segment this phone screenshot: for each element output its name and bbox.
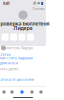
button[interactable]: Готово xyxy=(32,6,44,11)
staticText: ıll ≋ ▮ xyxy=(33,0,43,6)
staticText: Статья xyxy=(0,52,10,57)
staticText: Проверка Бюллетеня xyxy=(0,20,49,27)
button[interactable]: Toolbar item xyxy=(30,90,34,94)
staticText: Бюллетень Лидера xyxy=(1,46,33,50)
staticText: Блог, как стать лидером xyxy=(0,56,33,60)
button[interactable]: Toolbar item xyxy=(39,90,43,94)
button[interactable]: Toolbar item xyxy=(20,90,24,94)
button[interactable]: Toolbar item xyxy=(10,90,14,94)
staticText: Отписаться от рассылки xyxy=(0,77,34,82)
button[interactable]: Action xyxy=(18,33,25,40)
staticText: Лидера xyxy=(13,24,32,32)
staticText: Читать далее xyxy=(0,67,18,71)
staticText: 9:41 xyxy=(2,0,9,6)
staticText: Подписаться xyxy=(0,61,18,65)
button[interactable]: Toolbar item xyxy=(2,90,6,94)
staticText: Готово xyxy=(32,6,44,11)
